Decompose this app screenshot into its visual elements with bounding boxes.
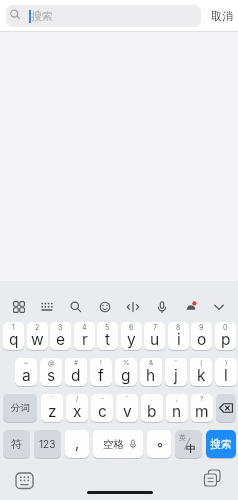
staticText: e — [56, 330, 66, 349]
button[interactable] — [147, 430, 171, 458]
staticText: 3 — [58, 323, 63, 331]
button[interactable]: 6 — [121, 322, 142, 350]
button[interactable]: ` — [41, 394, 63, 422]
button[interactable] — [14, 471, 36, 491]
button[interactable]: 2 — [27, 322, 48, 350]
staticText: 1 — [12, 323, 15, 331]
staticText: ? — [200, 395, 204, 403]
button[interactable]: 3 — [50, 322, 71, 350]
staticText: n — [172, 402, 182, 421]
staticText: 中 — [186, 443, 196, 455]
staticText: 搜索 — [210, 437, 232, 451]
staticText: d — [71, 366, 81, 385]
staticText: ˇ — [126, 395, 129, 403]
staticText: 2 — [35, 323, 40, 331]
staticText: ' — [175, 359, 177, 367]
button[interactable]: ) — [215, 358, 237, 386]
staticText: z — [48, 402, 57, 421]
staticText: @ — [48, 359, 55, 367]
button[interactable] — [92, 294, 118, 320]
button[interactable]: 8 — [168, 322, 189, 350]
staticText: 搜索 — [31, 9, 53, 23]
staticText: f — [98, 366, 104, 385]
staticText: 9 — [199, 323, 204, 331]
staticText: ` — [51, 395, 54, 403]
button[interactable]: ; — [166, 394, 188, 422]
staticText: b — [147, 402, 157, 421]
button[interactable]: 分词 — [3, 394, 37, 422]
button[interactable]: & — [140, 358, 162, 386]
staticText: h — [146, 366, 156, 385]
staticText: ) — [225, 359, 228, 367]
button[interactable]: , — [65, 430, 89, 458]
button[interactable]: 123 — [34, 430, 61, 458]
staticText: / — [76, 395, 79, 403]
button[interactable]: ! — [90, 358, 112, 386]
button[interactable]: 0 — [215, 322, 236, 350]
button[interactable] — [216, 394, 236, 422]
staticText: t — [105, 330, 111, 349]
staticText: p — [221, 330, 231, 349]
button[interactable]: - — [91, 394, 113, 422]
staticText: g — [121, 366, 131, 385]
staticText: 英 — [179, 433, 186, 442]
staticText: 4 — [82, 323, 87, 331]
button[interactable] — [63, 294, 89, 320]
staticText: ! — [100, 359, 102, 367]
button[interactable]: ˇ — [116, 394, 138, 422]
button[interactable]: 5 — [97, 322, 118, 350]
button[interactable] — [178, 294, 204, 320]
button[interactable]: 1 — [3, 322, 24, 350]
button[interactable]: 空格 — [93, 430, 143, 458]
staticText: c — [98, 402, 107, 421]
staticText: a — [22, 366, 31, 385]
button[interactable]: % — [115, 358, 137, 386]
button[interactable]: 英 — [175, 430, 202, 458]
button[interactable] — [149, 294, 175, 320]
button[interactable]: / — [66, 394, 88, 422]
staticText: 0 — [223, 323, 228, 331]
button[interactable]: ? — [191, 394, 213, 422]
staticText: ~ — [24, 359, 29, 367]
button[interactable] — [120, 294, 146, 320]
staticText: m — [195, 402, 209, 421]
staticText: : — [151, 395, 153, 403]
staticText: 符 — [11, 437, 22, 451]
button[interactable]: ( — [190, 358, 212, 386]
staticText: 5 — [105, 323, 110, 331]
button[interactable] — [6, 294, 32, 320]
button[interactable]: ' — [165, 358, 187, 386]
staticText: q — [9, 330, 19, 349]
staticText: 取消 — [211, 9, 233, 23]
staticText: r — [82, 330, 88, 349]
staticText: o — [197, 330, 207, 349]
button[interactable]: : — [141, 394, 163, 422]
staticText: i — [177, 330, 181, 349]
button[interactable]: 符 — [3, 430, 30, 458]
staticText: l — [224, 366, 228, 385]
staticText: 分词 — [11, 402, 30, 414]
button[interactable] — [206, 294, 232, 320]
staticText: 123 — [39, 438, 56, 450]
staticText: 8 — [176, 323, 181, 331]
button[interactable]: 搜索 — [6, 5, 201, 27]
button[interactable]: 搜索 — [206, 430, 236, 458]
button[interactable]: 取消 — [205, 0, 238, 31]
staticText: , — [75, 433, 80, 451]
button[interactable]: 7 — [144, 322, 165, 350]
button[interactable] — [202, 468, 225, 490]
button[interactable]: ~ — [15, 358, 37, 386]
button[interactable]: 4 — [74, 322, 95, 350]
button[interactable]: # — [65, 358, 87, 386]
button[interactable]: @ — [40, 358, 62, 386]
staticText: - — [101, 395, 104, 403]
button[interactable] — [34, 294, 60, 320]
staticText: 6 — [129, 323, 134, 331]
staticText: & — [149, 359, 154, 367]
staticText: 7 — [153, 323, 157, 331]
staticText: ( — [200, 359, 203, 367]
staticText: w — [31, 330, 44, 349]
button[interactable]: 9 — [191, 322, 212, 350]
staticText: k — [197, 366, 206, 385]
staticText: x — [73, 402, 82, 421]
